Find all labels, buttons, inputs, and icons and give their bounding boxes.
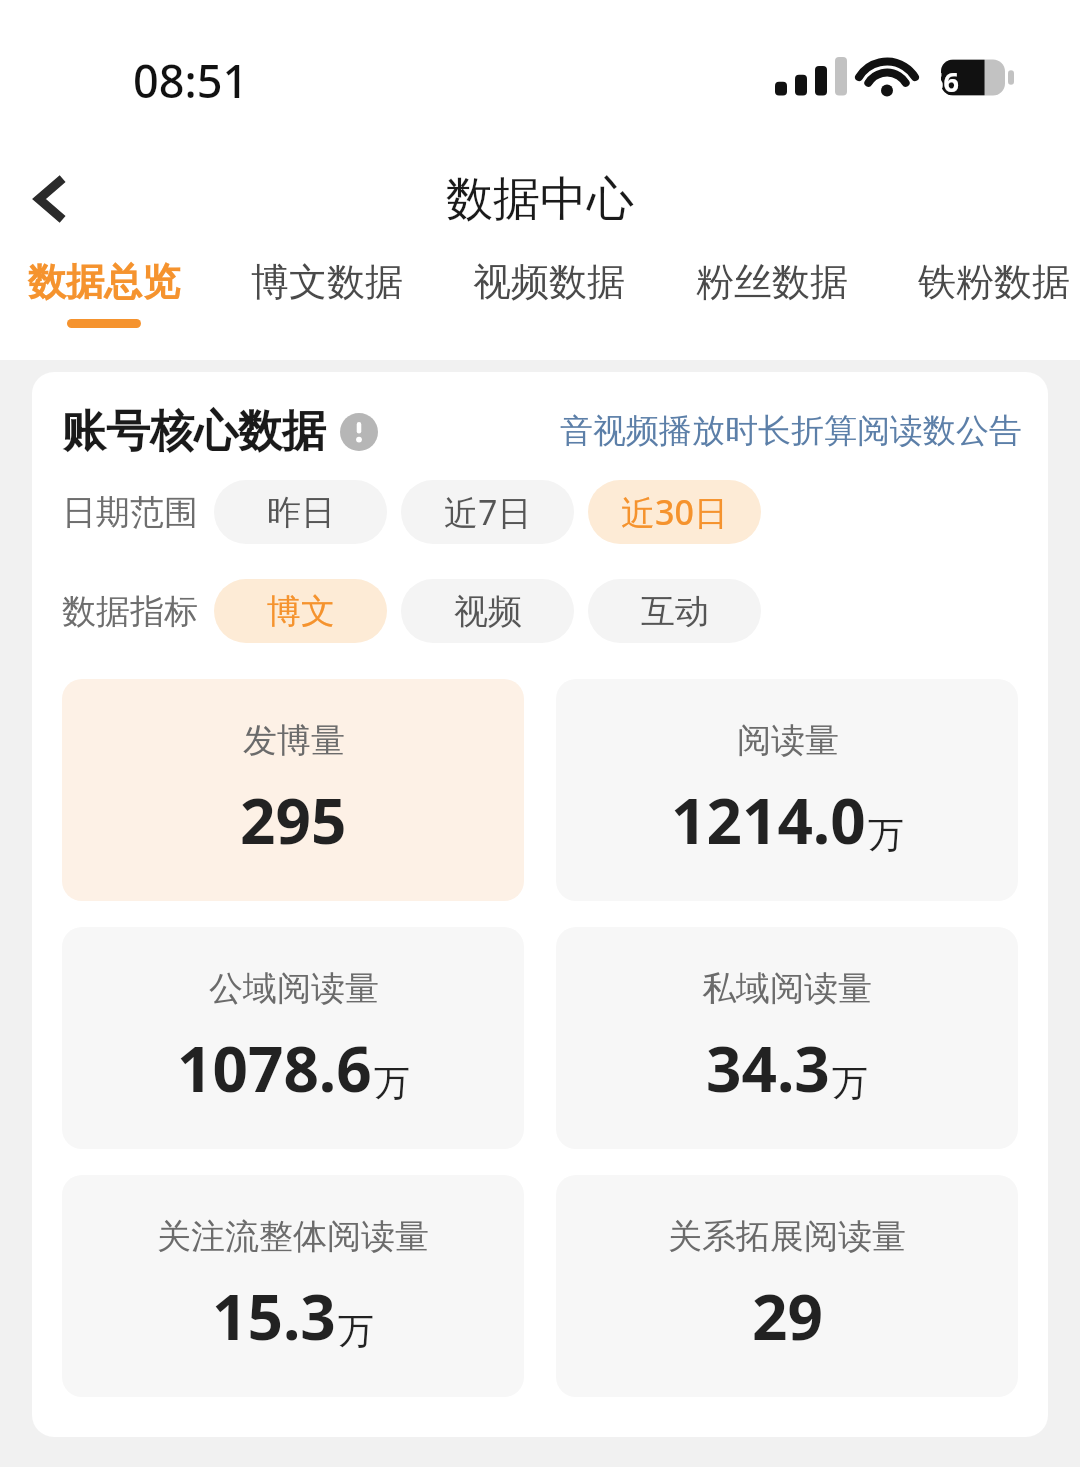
staticText: 1214.0 xyxy=(671,778,866,862)
staticText: 数据中心 xyxy=(446,170,634,229)
staticText: 日期范围 xyxy=(62,491,198,534)
staticText: 视频数据 xyxy=(473,258,625,306)
button[interactable]: Back xyxy=(0,149,100,249)
staticText: 博文 xyxy=(267,590,335,633)
button[interactable]: 公域阅读量 xyxy=(62,927,524,1149)
button[interactable]: 粉丝数据 xyxy=(690,258,854,319)
staticText: 08:51 xyxy=(133,50,249,111)
button[interactable]: 铁粉数据 xyxy=(912,258,1076,319)
button[interactable]: 音视频播放时长折算阅读数公告 xyxy=(560,410,1022,452)
button[interactable]: 发博量 xyxy=(62,679,524,901)
staticText: 34.3 xyxy=(706,1026,830,1110)
button[interactable]: 近7日 xyxy=(401,480,574,544)
button[interactable]: 博文数据 xyxy=(245,258,409,319)
button[interactable]: 视频数据 xyxy=(467,258,631,319)
staticText: 互动 xyxy=(641,590,709,633)
button[interactable]: 视频 xyxy=(401,579,574,643)
staticText: 私域阅读量 xyxy=(702,967,872,1010)
staticText: 15.3 xyxy=(212,1274,336,1358)
staticText: 视频 xyxy=(454,590,522,633)
staticText: 万 xyxy=(868,812,904,857)
button[interactable]: 关系拓展阅读量 xyxy=(556,1175,1018,1397)
staticText: 数据指标 xyxy=(62,590,198,633)
staticText: 万 xyxy=(374,1060,410,1105)
button[interactable]: 数据总览 xyxy=(22,258,186,328)
staticText: 1078.6 xyxy=(177,1026,372,1110)
button[interactable]: 账号核心数据 xyxy=(62,404,378,459)
staticText: 近7日 xyxy=(444,489,532,535)
staticText: 关注流整体阅读量 xyxy=(157,1215,429,1258)
staticText: 万 xyxy=(338,1308,374,1353)
button[interactable]: 阅读量 xyxy=(556,679,1018,901)
staticText: 阅读量 xyxy=(737,719,839,762)
staticText: 数据总览 xyxy=(28,258,180,306)
button[interactable]: 关注流整体阅读量 xyxy=(62,1175,524,1397)
staticText: 粉丝数据 xyxy=(696,258,848,306)
staticText: 昨日 xyxy=(267,491,335,534)
button[interactable]: 互动 xyxy=(588,579,761,643)
staticText: 账号核心数据 xyxy=(62,404,326,459)
staticText: 铁粉数据 xyxy=(918,258,1070,306)
staticText: 发博量 xyxy=(243,719,345,762)
staticText: 66 xyxy=(928,63,959,100)
staticText: 近30日 xyxy=(621,489,728,535)
staticText: 万 xyxy=(832,1060,868,1105)
button[interactable]: 近30日 xyxy=(588,480,761,544)
button[interactable]: 私域阅读量 xyxy=(556,927,1018,1149)
button[interactable]: 博文 xyxy=(214,579,387,643)
staticText: 关系拓展阅读量 xyxy=(668,1215,906,1258)
staticText: 博文数据 xyxy=(251,258,403,306)
staticText: 29 xyxy=(752,1274,823,1358)
other: Info xyxy=(340,413,378,451)
staticText: 公域阅读量 xyxy=(209,967,379,1010)
button[interactable]: 昨日 xyxy=(214,480,387,544)
staticText: 295 xyxy=(240,778,347,862)
